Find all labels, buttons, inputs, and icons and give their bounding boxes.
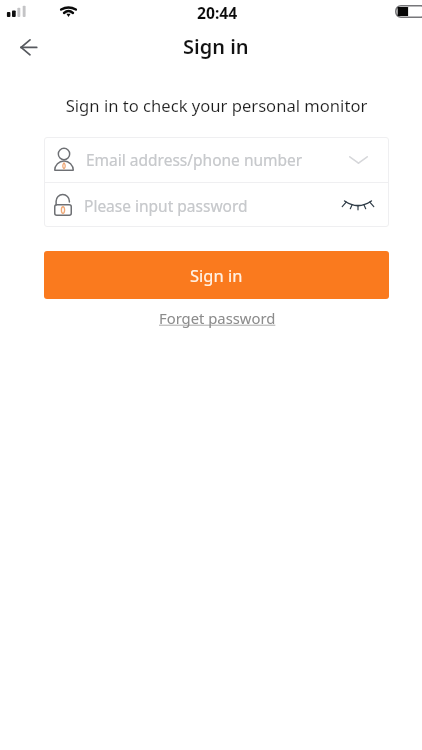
staticText: Please input password (84, 195, 248, 216)
staticText: Email address/phone number (86, 149, 303, 170)
staticText: Sign in to check your personal monitor (11, 94, 422, 117)
button[interactable]: Back (0, 26, 44, 68)
button[interactable]: Email address/phone number (44, 137, 389, 182)
button[interactable]: Sign in (44, 251, 389, 299)
button[interactable]: Expand saved accounts (338, 138, 378, 182)
staticText: Sign in (183, 33, 249, 60)
button[interactable]: Please input password (44, 183, 389, 227)
staticText: 20:44 (197, 2, 238, 23)
staticText: Forget password (159, 308, 276, 328)
button[interactable]: Show password (338, 183, 378, 227)
staticText: Sign in (190, 264, 243, 286)
button[interactable]: Forget password (153, 305, 282, 331)
